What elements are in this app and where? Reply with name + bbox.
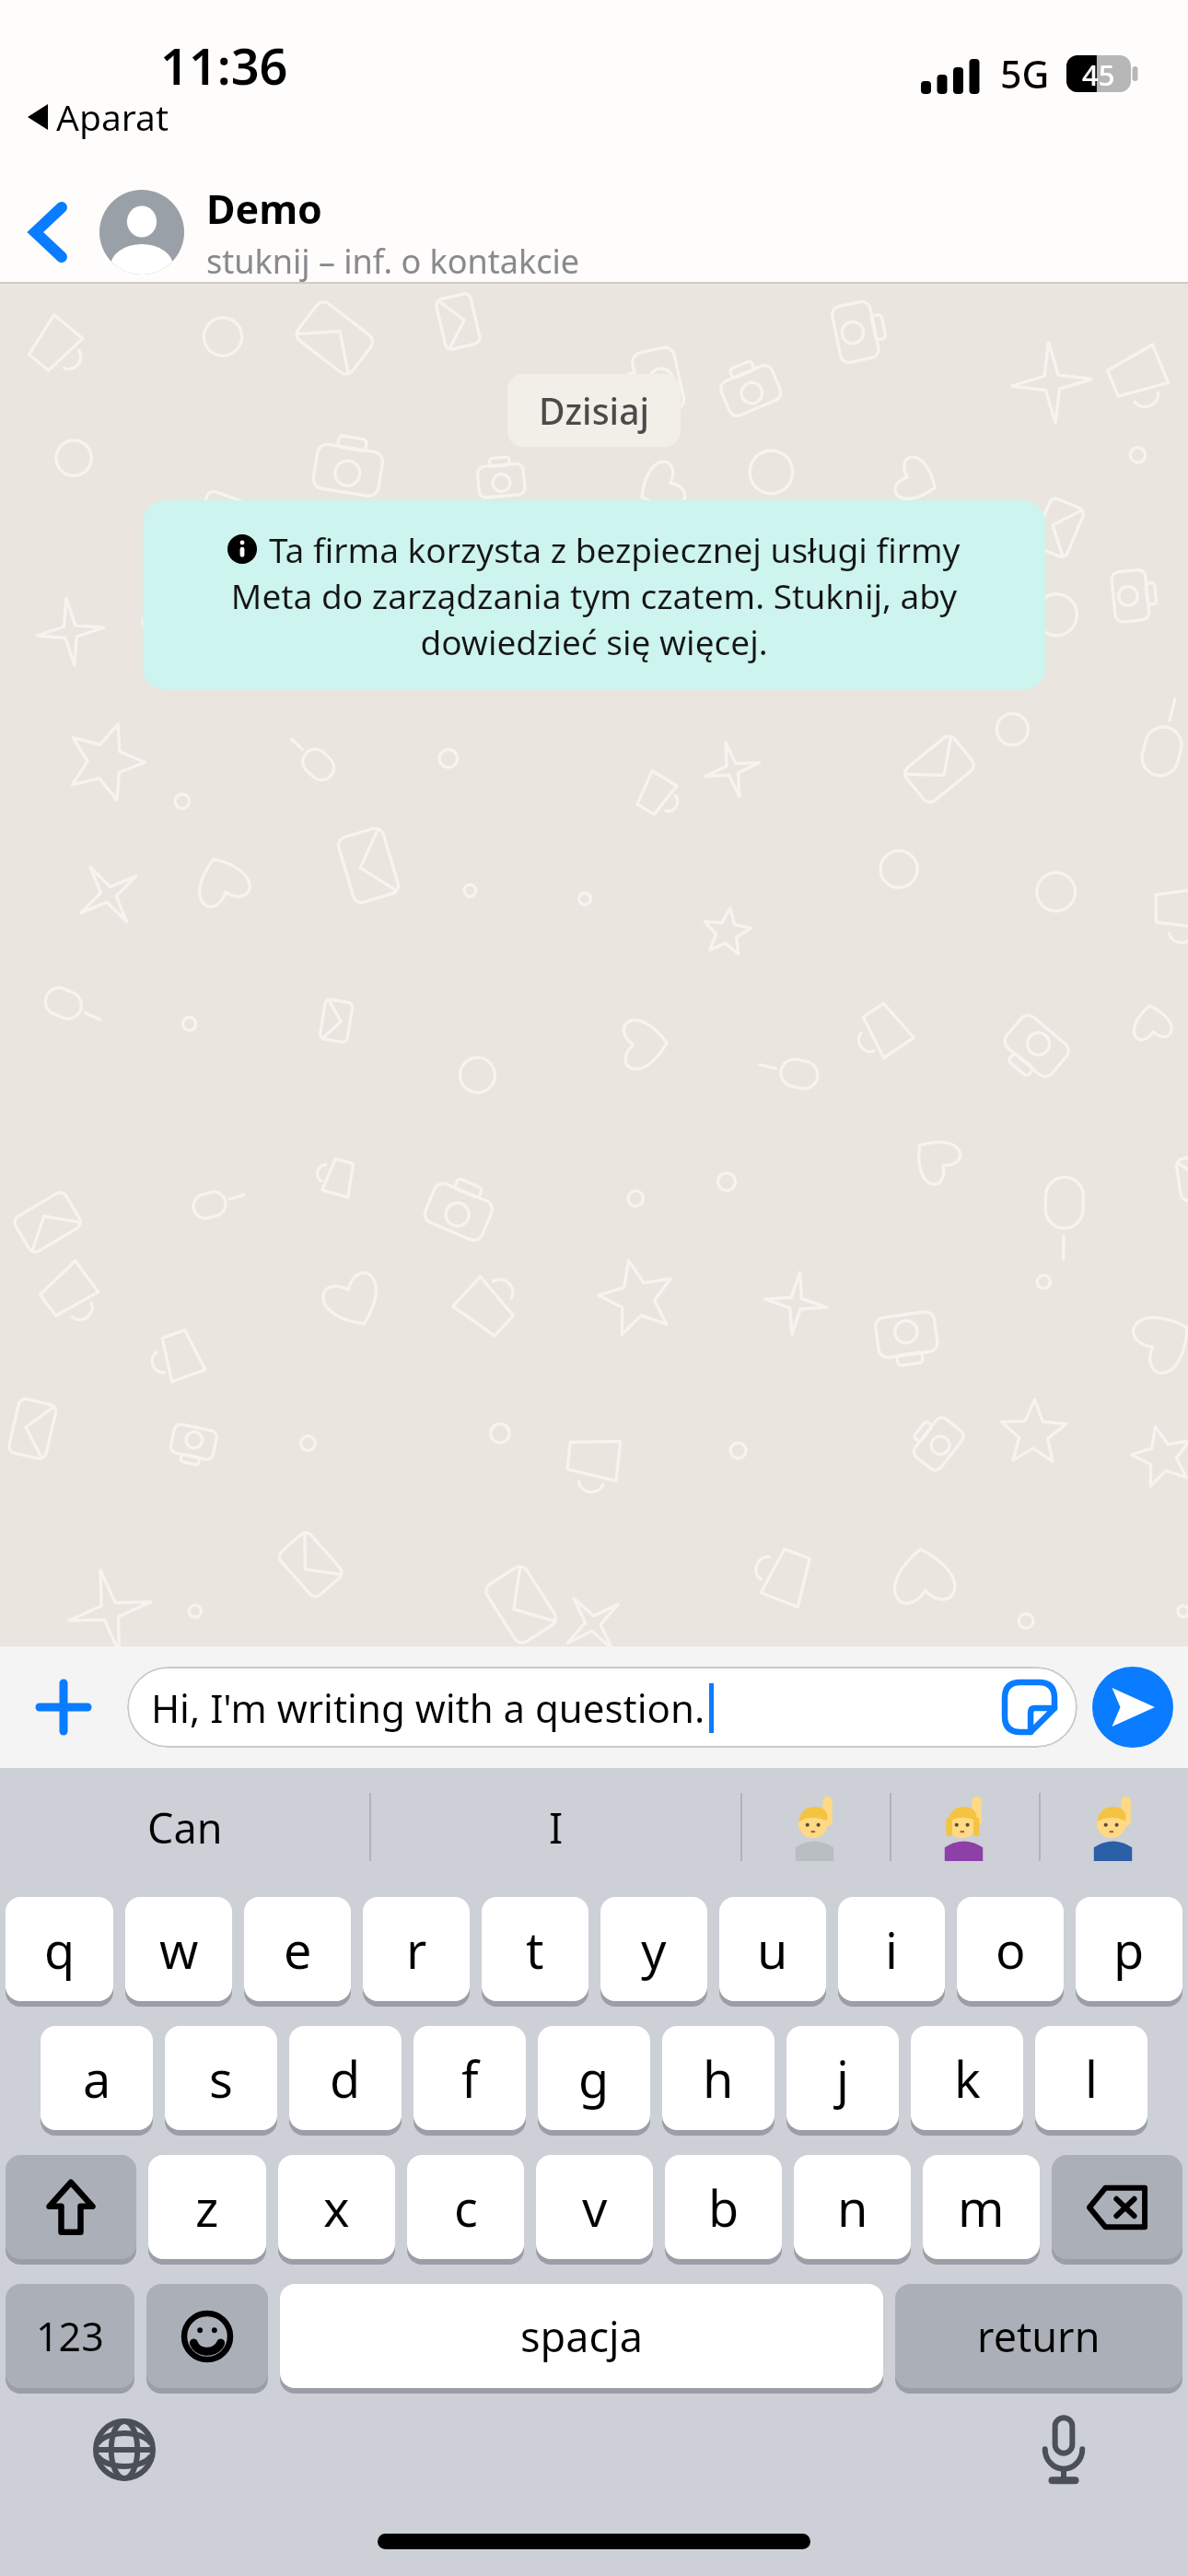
button[interactable]: Demo (99, 181, 1188, 284)
staticText: Aparat (56, 92, 169, 141)
button[interactable]: Dzisiaj (507, 374, 681, 447)
button[interactable]: Dictation (1022, 2408, 1105, 2491)
button[interactable]: return (895, 2284, 1182, 2388)
staticText: k (954, 2044, 981, 2113)
staticText: 5G (1000, 48, 1050, 100)
button[interactable]: Ta firma korzysta z bezpiecznej usługi f… (143, 500, 1045, 690)
button[interactable]: x (278, 2155, 395, 2259)
button[interactable]: k (911, 2026, 1023, 2130)
button[interactable]: Hi, I'm writing with a question. (127, 1667, 1077, 1748)
button[interactable]: o (957, 1897, 1064, 2001)
button[interactable]: u (719, 1897, 826, 2001)
button[interactable]: l (1035, 2026, 1147, 2130)
button[interactable]: s (165, 2026, 277, 2130)
button[interactable]: e (244, 1897, 351, 2001)
staticText: h (703, 2044, 734, 2113)
button[interactable]: m (923, 2155, 1040, 2259)
staticText: 45 (1082, 55, 1115, 92)
staticText: return (977, 2308, 1101, 2364)
staticText: m (958, 2173, 1005, 2242)
button[interactable]: 123 (6, 2284, 134, 2388)
button[interactable]: Shift (6, 2155, 136, 2259)
staticText: g (578, 2044, 610, 2113)
button[interactable]: y (600, 1897, 707, 2001)
button[interactable]: d (289, 2026, 402, 2130)
button[interactable]: Emoji (146, 2284, 268, 2388)
button[interactable]: Backspace (1052, 2155, 1182, 2259)
button[interactable]: Stickers (982, 1667, 1077, 1748)
staticText: b (708, 2173, 740, 2242)
button[interactable]: Can (0, 1768, 369, 1886)
staticText: d (330, 2044, 361, 2113)
staticText: I (549, 1799, 564, 1856)
button[interactable]: z (148, 2155, 266, 2259)
staticText: p (1113, 1915, 1145, 1984)
staticText: y (641, 1915, 667, 1984)
button[interactable]: Emoji suggestion (891, 1768, 1039, 1886)
button[interactable]: w (125, 1897, 232, 2001)
staticText: z (195, 2173, 219, 2242)
staticText: l (1085, 2044, 1098, 2113)
button[interactable]: spacja (280, 2284, 883, 2388)
staticText: Ta firma korzysta z bezpiecznej usługi f… (269, 526, 961, 572)
staticText: j (836, 2044, 849, 2113)
button[interactable]: j (786, 2026, 899, 2130)
staticText: Meta do zarządzania tym czatem. Stuknij,… (163, 572, 1025, 618)
button[interactable]: Attach (0, 1646, 127, 1768)
button[interactable]: Back (0, 181, 99, 284)
staticText: 123 (36, 2309, 104, 2363)
button[interactable]: v (536, 2155, 653, 2259)
staticText: i (885, 1915, 898, 1984)
staticText: a (83, 2044, 111, 2113)
button[interactable]: I (371, 1768, 740, 1886)
button[interactable]: n (794, 2155, 911, 2259)
button[interactable]: Emoji suggestion (1041, 1768, 1188, 1886)
staticText: spacja (520, 2308, 643, 2364)
button[interactable]: r (363, 1897, 470, 2001)
staticText: x (323, 2173, 350, 2242)
button[interactable]: p (1076, 1897, 1182, 2001)
button[interactable]: h (662, 2026, 775, 2130)
staticText: c (454, 2173, 478, 2242)
staticText: f (461, 2044, 479, 2113)
button[interactable]: b (665, 2155, 782, 2259)
staticText: r (406, 1915, 427, 1984)
staticText: dowiedzieć się więcej. (163, 618, 1025, 664)
button[interactable]: Emoji suggestion (742, 1768, 890, 1886)
staticText: n (837, 2173, 868, 2242)
staticText: 11:36 (160, 31, 288, 100)
staticText: Hi, I'm writing with a question. (151, 1681, 705, 1734)
button[interactable]: g (538, 2026, 650, 2130)
button[interactable]: Aparat (28, 92, 169, 141)
button[interactable]: Send (1077, 1646, 1188, 1768)
button[interactable]: t (482, 1897, 588, 2001)
staticText: v (582, 2173, 608, 2242)
staticText: o (996, 1915, 1026, 1984)
staticText: u (757, 1915, 788, 1984)
button[interactable]: a (41, 2026, 153, 2130)
staticText: Demo (206, 181, 322, 236)
staticText: w (159, 1915, 199, 1984)
staticText: stuknij – inf. o kontakcie (206, 239, 580, 284)
button[interactable]: c (407, 2155, 524, 2259)
button[interactable]: i (838, 1897, 945, 2001)
button[interactable]: Next keyboard (83, 2408, 166, 2491)
button[interactable]: q (6, 1897, 113, 2001)
staticText: s (209, 2044, 233, 2113)
button[interactable]: f (413, 2026, 526, 2130)
staticText: q (44, 1915, 76, 1984)
staticText: Dzisiaj (539, 386, 649, 435)
staticText: Can (147, 1799, 223, 1856)
staticText: e (284, 1915, 312, 1984)
staticText: t (526, 1915, 544, 1984)
